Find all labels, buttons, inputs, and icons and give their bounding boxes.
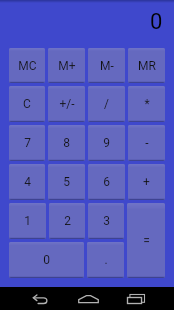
staticText: M- bbox=[100, 59, 114, 73]
button[interactable]: M- bbox=[88, 48, 125, 83]
staticText: 9 bbox=[103, 136, 110, 150]
staticText: 3 bbox=[103, 214, 110, 228]
button[interactable]: 3 bbox=[88, 203, 124, 239]
button[interactable]: +/- bbox=[48, 86, 85, 122]
button[interactable]: Recents bbox=[112, 287, 160, 310]
button[interactable]: 9 bbox=[88, 125, 125, 161]
button[interactable]: = bbox=[127, 203, 165, 278]
button[interactable]: Home bbox=[64, 287, 112, 310]
staticText: 8 bbox=[63, 136, 70, 150]
button[interactable]: MR bbox=[128, 48, 165, 83]
staticText: C bbox=[23, 97, 31, 111]
staticText: 7 bbox=[24, 136, 31, 150]
button[interactable]: C bbox=[9, 86, 45, 122]
button[interactable]: 4 bbox=[9, 164, 45, 200]
staticText: 4 bbox=[24, 175, 31, 189]
button[interactable]: M+ bbox=[48, 48, 85, 83]
staticText: 5 bbox=[63, 175, 70, 189]
staticText: 2 bbox=[64, 214, 71, 228]
button[interactable]: * bbox=[128, 86, 165, 122]
staticText: M+ bbox=[58, 59, 76, 73]
staticText: MR bbox=[138, 59, 156, 73]
staticText: . bbox=[104, 253, 108, 267]
staticText: + bbox=[143, 175, 150, 189]
button[interactable]: 0 bbox=[9, 242, 84, 278]
button[interactable]: 7 bbox=[9, 125, 45, 161]
button[interactable]: 2 bbox=[49, 203, 85, 239]
button[interactable]: MC bbox=[9, 48, 45, 83]
button[interactable]: + bbox=[128, 164, 165, 200]
staticText: +/- bbox=[59, 97, 75, 111]
staticText: * bbox=[144, 97, 150, 111]
button[interactable]: . bbox=[87, 242, 124, 278]
button[interactable]: Back bbox=[16, 287, 64, 310]
staticText: - bbox=[145, 136, 149, 150]
staticText: 0 bbox=[150, 9, 163, 35]
button[interactable]: 1 bbox=[9, 203, 46, 239]
button[interactable]: - bbox=[128, 125, 165, 161]
staticText: 1 bbox=[24, 214, 31, 228]
button[interactable]: / bbox=[88, 86, 125, 122]
button[interactable]: 5 bbox=[48, 164, 85, 200]
staticText: MC bbox=[18, 59, 37, 73]
staticText: 6 bbox=[103, 175, 110, 189]
button[interactable]: 8 bbox=[48, 125, 85, 161]
staticText: / bbox=[104, 97, 109, 111]
button[interactable]: 6 bbox=[88, 164, 125, 200]
staticText: = bbox=[143, 234, 150, 248]
staticText: 0 bbox=[43, 253, 50, 267]
